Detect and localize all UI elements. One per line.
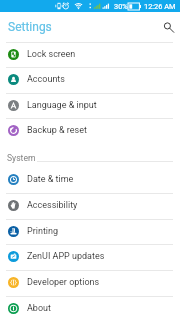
button[interactable]: Accounts <box>0 67 180 92</box>
staticText: Lock screen <box>27 49 76 60</box>
staticText: System <box>7 153 36 163</box>
button[interactable]: ZenUI APP updates <box>0 244 180 269</box>
button[interactable]: Language & input <box>0 93 180 118</box>
staticText: Accessibility <box>27 200 78 211</box>
staticText: Accounts <box>27 74 65 85</box>
staticText: Printing <box>27 226 59 237</box>
staticText: 30% <box>114 2 128 11</box>
staticText: Settings <box>8 20 52 34</box>
button[interactable]: Search <box>156 15 180 39</box>
button[interactable]: Developer options <box>0 270 180 295</box>
staticText: Developer options <box>27 277 100 288</box>
staticText: Backup & reset <box>27 125 87 136</box>
button[interactable]: Backup & reset <box>0 118 180 143</box>
button[interactable]: About <box>0 296 180 320</box>
staticText: ZenUI APP updates <box>27 251 105 262</box>
staticText: About <box>27 303 51 314</box>
button[interactable]: Accessibility <box>0 193 180 218</box>
staticText: 12:26 AM <box>144 2 176 11</box>
button[interactable]: Lock screen <box>0 42 180 67</box>
staticText: Date & time <box>27 174 74 185</box>
button[interactable]: Date & time <box>0 167 180 192</box>
button[interactable]: Printing <box>0 219 180 244</box>
staticText: Language & input <box>27 100 97 111</box>
